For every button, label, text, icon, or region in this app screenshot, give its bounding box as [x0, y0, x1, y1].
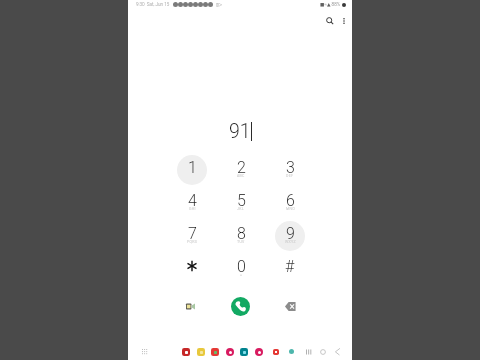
button[interactable]: 4 — [177, 188, 207, 218]
button[interactable] — [177, 254, 207, 284]
button[interactable]: Backspace — [278, 294, 302, 318]
staticText: 4 — [188, 191, 197, 210]
staticText: # — [285, 257, 295, 276]
button[interactable]: 3 — [275, 155, 305, 185]
staticText: 0 — [237, 257, 246, 276]
button[interactable]: # — [275, 254, 305, 284]
staticText: 3 — [286, 158, 295, 177]
button[interactable]: More options — [337, 14, 351, 28]
staticText: JKL — [237, 207, 245, 211]
button[interactable] — [255, 348, 263, 356]
staticText: MNO — [286, 207, 295, 211]
button[interactable]: 5 — [226, 188, 256, 218]
button[interactable] — [289, 349, 294, 354]
button[interactable]: Video call — [178, 294, 202, 318]
staticText: 1 — [188, 158, 197, 177]
button[interactable]: Call — [231, 297, 250, 316]
staticText: 8 — [237, 224, 246, 243]
staticText: WXYZ — [285, 240, 296, 244]
button[interactable]: 6 — [275, 188, 305, 218]
button[interactable] — [182, 348, 190, 356]
button[interactable] — [240, 348, 248, 356]
button[interactable]: 8 — [226, 221, 256, 251]
button[interactable]: Recents — [302, 345, 315, 358]
button[interactable]: 0 — [226, 254, 256, 284]
staticText: 9:30 Sat, Jun 15 — [136, 2, 170, 7]
staticText: 2 — [237, 158, 246, 177]
staticText: 6 — [286, 191, 295, 210]
staticText: ■≈▲ 88% — [320, 2, 341, 7]
button[interactable]: 7 — [177, 221, 207, 251]
staticText: GHI — [189, 207, 196, 211]
button[interactable] — [211, 348, 219, 356]
button[interactable]: 9 — [275, 221, 305, 251]
staticText: TUV — [237, 240, 245, 244]
staticText: ▯▷ — [216, 2, 223, 7]
button[interactable]: 2 — [226, 155, 256, 185]
button[interactable]: Home — [316, 345, 329, 358]
staticText: 5 — [237, 191, 246, 210]
staticText: 7 — [188, 224, 197, 243]
button[interactable]: 1 — [177, 155, 207, 185]
button[interactable] — [226, 348, 234, 356]
button[interactable]: Back — [331, 345, 344, 358]
staticText: 91 — [229, 120, 251, 143]
button[interactable]: App drawer — [141, 348, 148, 355]
button[interactable] — [273, 349, 279, 355]
staticText: DEF — [286, 174, 294, 178]
staticText: PQRS — [187, 240, 198, 244]
button[interactable] — [197, 348, 205, 356]
button[interactable]: Search — [323, 14, 337, 28]
staticText: 9 — [286, 224, 295, 243]
staticText: + — [240, 273, 243, 277]
staticText: ABC — [237, 174, 245, 178]
